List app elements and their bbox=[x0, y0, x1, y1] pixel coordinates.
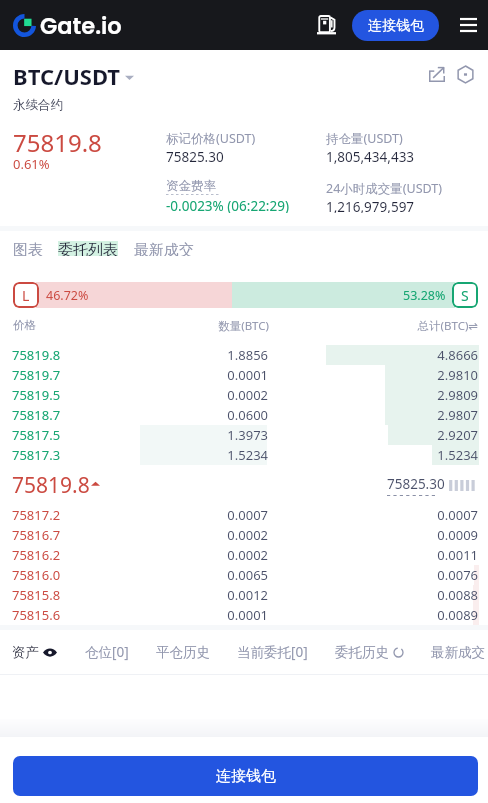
staticText: 1.8856 bbox=[122, 346, 268, 364]
staticText: 最新成交 bbox=[134, 241, 194, 256]
staticText: -0.0023% (06:22:29) bbox=[166, 197, 289, 213]
button[interactable]: 最新成交 bbox=[134, 231, 194, 266]
staticText: 永续合约 bbox=[13, 97, 63, 113]
staticText: L bbox=[22, 286, 30, 305]
staticText: 连接钱包 bbox=[216, 767, 276, 786]
button[interactable]: 75825.30 bbox=[387, 475, 445, 496]
button[interactable]: 75816.7 bbox=[0, 525, 488, 545]
staticText: 75816.2 bbox=[12, 546, 122, 564]
staticText: 0.0065 bbox=[122, 566, 268, 584]
staticText: 75819.7 bbox=[12, 366, 122, 384]
button[interactable]: 75815.6 bbox=[0, 605, 488, 625]
staticText: 总计(BTC)⇌ bbox=[269, 318, 478, 334]
staticText: 75819.8 bbox=[12, 346, 122, 364]
button[interactable]: Gas fee bbox=[313, 10, 340, 40]
button[interactable]: 当前委托[0] bbox=[237, 643, 308, 661]
staticText: 75825.30 bbox=[387, 475, 445, 493]
staticText: 价格 bbox=[13, 318, 123, 332]
staticText: 0.0002 bbox=[122, 386, 268, 404]
staticText: 0.0012 bbox=[122, 586, 268, 604]
staticText: 图表 bbox=[13, 241, 43, 256]
button[interactable]: L bbox=[13, 282, 39, 308]
button[interactable]: 连接钱包 bbox=[352, 10, 439, 41]
staticText: Gate.io bbox=[40, 10, 122, 41]
button[interactable]: Open in new window bbox=[424, 61, 450, 87]
button[interactable]: Menu bbox=[453, 10, 483, 40]
staticText: 75817.3 bbox=[12, 446, 122, 464]
staticText: 0.0011 bbox=[268, 546, 478, 564]
staticText: 24小时成交量(USDT) bbox=[326, 180, 443, 197]
button[interactable]: 连接钱包 bbox=[13, 756, 478, 796]
button[interactable]: Settings bbox=[452, 61, 478, 87]
staticText: 75817.2 bbox=[12, 506, 122, 524]
staticText: 数量(BTC) bbox=[123, 318, 269, 334]
button[interactable]: 最新成交 bbox=[431, 644, 485, 661]
staticText: 0.0007 bbox=[122, 506, 268, 524]
staticText: 0.0089 bbox=[268, 606, 478, 624]
staticText: 0.61% bbox=[13, 155, 50, 173]
button[interactable]: S bbox=[452, 282, 478, 308]
staticText: 75816.7 bbox=[12, 526, 122, 544]
staticText: 1,216,979,597 bbox=[326, 198, 415, 213]
staticText: 委托列表 bbox=[58, 241, 118, 256]
staticText: 2.9809 bbox=[268, 386, 478, 404]
button[interactable]: 75815.8 bbox=[0, 585, 488, 605]
staticText: 75816.0 bbox=[12, 566, 122, 584]
staticText: 持仓量(USDT) bbox=[326, 130, 403, 147]
staticText: 75818.7 bbox=[12, 406, 122, 424]
staticText: 0.0009 bbox=[268, 526, 478, 544]
staticText: 53.28% bbox=[403, 287, 446, 304]
button[interactable]: 图表 bbox=[13, 231, 43, 266]
staticText: 0.0002 bbox=[122, 546, 268, 564]
staticText: 0.0001 bbox=[122, 606, 268, 624]
staticText: BTC/USDT bbox=[13, 61, 121, 91]
button[interactable]: 75819.5 bbox=[0, 385, 488, 405]
staticText: 0.0002 bbox=[122, 526, 268, 544]
staticText: 75817.5 bbox=[12, 426, 122, 444]
button[interactable]: 平仓历史 bbox=[156, 644, 210, 661]
button[interactable]: 75819.7 bbox=[0, 365, 488, 385]
staticText: 75819.5 bbox=[12, 386, 122, 404]
staticText: 75815.8 bbox=[12, 586, 122, 604]
staticText: 1.5234 bbox=[122, 446, 268, 464]
button[interactable]: 仓位[0] bbox=[85, 643, 129, 661]
staticText: 资金费率 bbox=[166, 178, 216, 194]
staticText: 0.0001 bbox=[122, 366, 268, 384]
button[interactable]: Depth chart bbox=[449, 480, 478, 491]
staticText: 资产 bbox=[12, 644, 39, 661]
button[interactable]: 75817.2 bbox=[0, 505, 488, 525]
button[interactable]: 75818.7 bbox=[0, 405, 488, 425]
button[interactable]: 75819.8 bbox=[0, 345, 488, 365]
staticText: 0.0088 bbox=[268, 586, 478, 604]
button[interactable]: 75817.3 bbox=[0, 445, 488, 465]
staticText: 46.72% bbox=[46, 287, 89, 304]
button[interactable]: 委托列表 bbox=[58, 231, 118, 266]
staticText: 75825.30 bbox=[166, 148, 224, 166]
staticText: 0.0007 bbox=[268, 506, 478, 524]
staticText: 1,805,434,433 bbox=[326, 148, 415, 166]
staticText: 2.9207 bbox=[268, 426, 478, 444]
staticText: 0.0600 bbox=[122, 406, 268, 424]
staticText: 0.0076 bbox=[268, 566, 478, 584]
staticText: 2.9810 bbox=[268, 366, 478, 384]
staticText: 2.9807 bbox=[268, 406, 478, 424]
button[interactable]: 75817.5 bbox=[0, 425, 488, 445]
staticText: S bbox=[461, 286, 469, 305]
button[interactable]: 资产 bbox=[12, 644, 57, 661]
staticText: 75815.6 bbox=[12, 606, 122, 624]
button[interactable]: 75816.2 bbox=[0, 545, 488, 565]
staticText: 连接钱包 bbox=[368, 17, 424, 35]
button[interactable]: 委托历史 bbox=[335, 644, 404, 661]
staticText: 1.3973 bbox=[122, 426, 268, 444]
staticText: 委托历史 bbox=[335, 644, 389, 661]
staticText: 4.8666 bbox=[268, 346, 478, 364]
staticText: 75819.8 bbox=[12, 471, 90, 500]
staticText: 75819.8 bbox=[13, 126, 102, 159]
button[interactable]: 75816.0 bbox=[0, 565, 488, 585]
staticText: 标记价格(USDT) bbox=[166, 130, 256, 147]
staticText: 1.5234 bbox=[268, 446, 478, 464]
